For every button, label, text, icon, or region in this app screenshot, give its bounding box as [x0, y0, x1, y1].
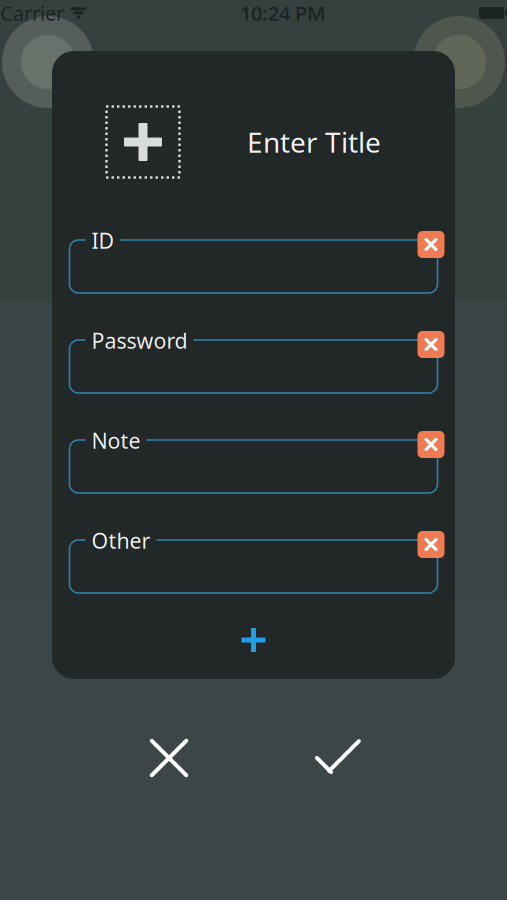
button[interactable]: Remove Note field	[417, 431, 444, 458]
staticText: Carrier	[0, 0, 64, 26]
staticText: Enter Title	[247, 123, 381, 161]
button[interactable]: Remove Other field	[417, 531, 444, 558]
button[interactable]: Add field	[223, 619, 283, 661]
staticText: Password	[91, 326, 187, 355]
button[interactable]: Add image	[105, 105, 181, 179]
staticText: Note	[91, 426, 140, 455]
button[interactable]: Remove ID field	[417, 231, 444, 258]
button[interactable]: Cancel	[132, 721, 206, 795]
button[interactable]: Remove Password field	[417, 331, 444, 358]
button[interactable]: Enter Title	[224, 122, 404, 162]
button[interactable]: Save	[301, 721, 375, 795]
staticText: Other	[91, 526, 150, 555]
staticText: 10:24 PM	[240, 0, 326, 26]
staticText: ID	[91, 226, 114, 255]
